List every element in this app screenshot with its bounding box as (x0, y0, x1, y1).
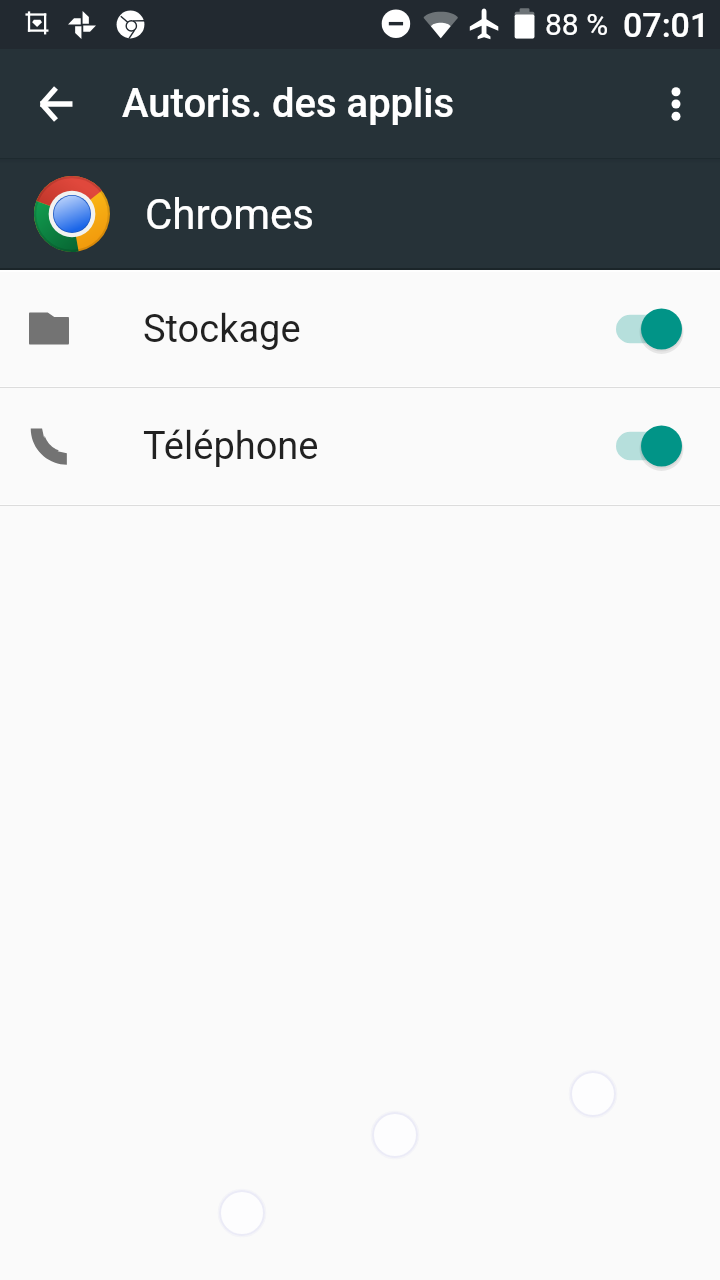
button[interactable]: Back (28, 76, 84, 132)
button[interactable]: Téléphone (0, 388, 720, 504)
staticText: Chromes (145, 190, 315, 239)
staticText: Téléphone (143, 424, 319, 469)
button[interactable]: Stockage (0, 272, 720, 386)
staticText: Stockage (143, 307, 301, 352)
staticText: 07:01 (623, 5, 710, 45)
staticText: 88 % (545, 7, 609, 42)
button[interactable]: Chromes (0, 158, 720, 270)
staticText: Autoris. des applis (122, 80, 455, 127)
button[interactable]: More options (648, 76, 704, 132)
